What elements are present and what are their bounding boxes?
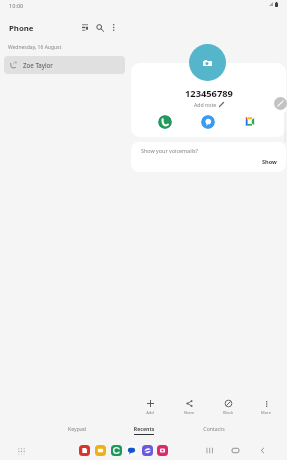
button[interactable]: Recents — [122, 425, 166, 435]
button[interactable]: Video call — [242, 115, 256, 129]
button[interactable]: Call — [158, 115, 172, 129]
button[interactable]: Sort by — [78, 21, 91, 34]
button[interactable]: Zoe Taylor — [4, 56, 125, 74]
staticText: 10:00 — [9, 2, 24, 10]
staticText: Show your voicemails? — [141, 147, 198, 154]
button[interactable]: Back — [257, 445, 268, 456]
staticText: Contacts — [192, 425, 236, 432]
staticText: Phone — [9, 23, 34, 34]
button[interactable]: Contact photo — [189, 44, 226, 81]
button[interactable]: All apps — [15, 445, 27, 457]
button[interactable]: Message — [201, 115, 215, 129]
button[interactable]: Search — [93, 21, 106, 34]
button[interactable]: Show — [259, 157, 280, 167]
button[interactable]: App shortcut — [111, 445, 122, 456]
staticText: More — [250, 410, 282, 415]
button[interactable]: Contacts — [192, 425, 236, 432]
staticText: 123456789 — [185, 87, 233, 100]
button[interactable]: Keypad — [55, 425, 99, 432]
button[interactable]: More options — [107, 21, 120, 34]
staticText: Recents — [122, 425, 166, 432]
staticText: Share — [173, 410, 205, 415]
button[interactable]: Block — [212, 400, 244, 415]
button[interactable]: App shortcut — [157, 445, 168, 456]
button[interactable]: App shortcut — [79, 445, 90, 456]
staticText: Add — [134, 410, 166, 415]
button[interactable]: Add note — [194, 101, 224, 108]
button[interactable]: App shortcut — [95, 445, 106, 456]
button[interactable]: App shortcut — [142, 445, 153, 456]
staticText: Wednesday, 16 August — [8, 44, 62, 51]
button[interactable]: Share — [173, 400, 205, 415]
staticText: Show — [262, 158, 277, 166]
button[interactable]: App shortcut — [126, 445, 137, 456]
staticText: Block — [212, 410, 244, 415]
button[interactable]: Add — [134, 400, 166, 415]
button[interactable]: Recent apps — [204, 445, 215, 456]
staticText: Add note — [194, 101, 217, 108]
button[interactable]: More — [250, 400, 282, 415]
staticText: Keypad — [55, 425, 99, 432]
button[interactable]: Home — [230, 445, 241, 456]
button[interactable]: Resize panels — [274, 97, 287, 110]
staticText: Zoe Taylor — [23, 61, 53, 69]
